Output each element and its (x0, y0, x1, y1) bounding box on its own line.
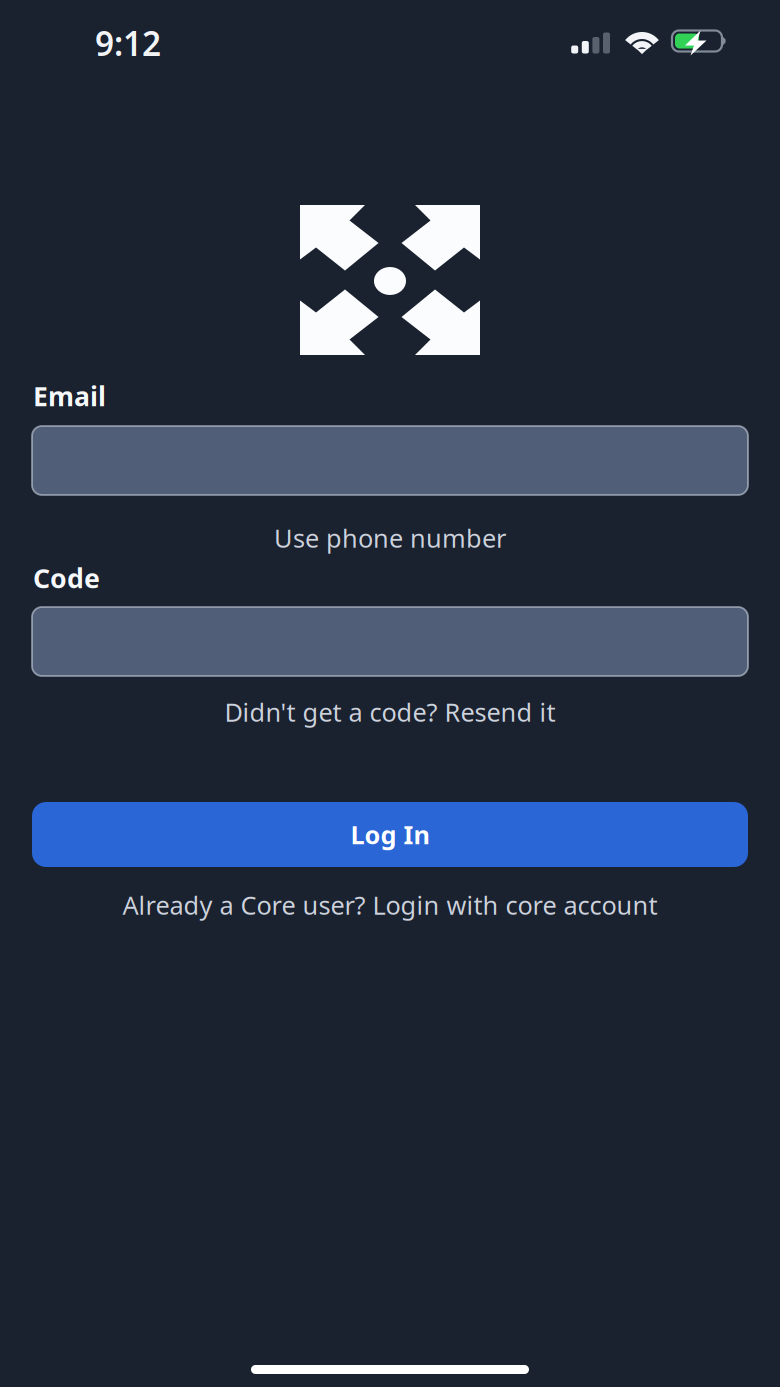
staticText: Use phone number (274, 521, 506, 555)
button[interactable]: Email (32, 426, 748, 495)
staticText: Email (33, 378, 106, 414)
button[interactable]: Already a Core user? Login with core acc… (0, 892, 780, 918)
button[interactable]: Didn't get a code? Resend it (0, 699, 780, 725)
button[interactable]: Code (32, 607, 748, 676)
staticText: Didn't get a code? Resend it (224, 695, 555, 729)
staticText: Already a Core user? Login with core acc… (122, 888, 657, 922)
staticText: Code (33, 560, 100, 596)
button[interactable]: Log In (32, 802, 748, 867)
staticText: Log In (350, 818, 429, 851)
staticText: 9:12 (95, 21, 161, 65)
button[interactable]: Use phone number (0, 525, 780, 551)
